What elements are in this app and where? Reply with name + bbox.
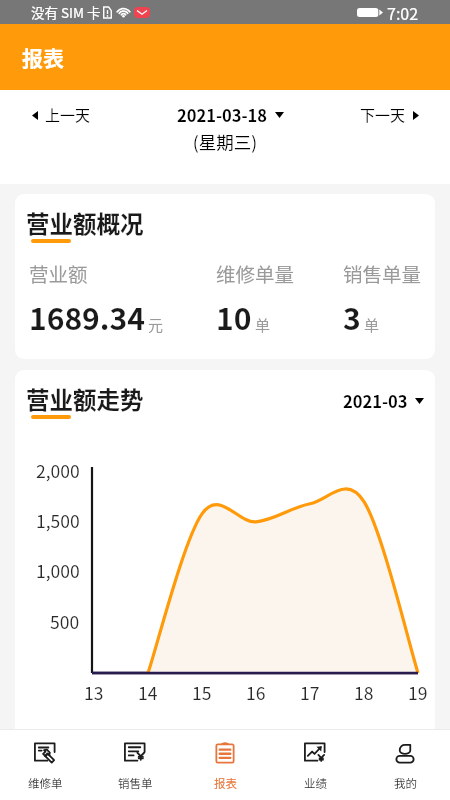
staticText: 单 — [255, 314, 271, 336]
staticText: 下一天 — [360, 104, 406, 126]
staticText: 16 — [246, 680, 266, 704]
staticText: 1,500 — [36, 508, 80, 533]
staticText: (星期三) — [0, 129, 450, 155]
staticText: 17 — [300, 680, 320, 704]
staticText: 7:02 — [387, 1, 419, 24]
staticText: 2,000 — [36, 458, 80, 483]
staticText: 报表 — [214, 775, 237, 792]
staticText: 维修单 — [28, 775, 63, 792]
staticText: 维修单量 — [216, 259, 295, 287]
button[interactable]: 报表 — [180, 730, 270, 800]
staticText: 2021-03 — [343, 389, 408, 413]
staticText: 13 — [84, 680, 104, 704]
staticText: 18 — [354, 680, 374, 704]
staticText: 上一天 — [45, 104, 91, 126]
staticText: 元 — [148, 314, 164, 336]
staticText: 1689.34 — [29, 295, 145, 338]
staticText: 单 — [364, 314, 380, 336]
staticText: 销售单量 — [343, 259, 422, 287]
staticText: 营业额概况 — [26, 206, 144, 240]
staticText: 19 — [408, 680, 428, 704]
button[interactable]: 上一天 — [32, 104, 91, 126]
button[interactable]: 2021-03 — [343, 389, 424, 413]
staticText: 没有 SIM 卡 — [31, 2, 101, 22]
staticText: 15 — [192, 680, 212, 704]
button[interactable]: 下一天 — [360, 104, 419, 126]
staticText: 3 — [343, 295, 361, 338]
staticText: 我的 — [394, 775, 417, 792]
button[interactable]: 维修单 — [0, 730, 90, 800]
staticText: 14 — [138, 680, 158, 704]
staticText: 销售单 — [118, 775, 153, 792]
staticText: 2021-03-18 — [177, 103, 268, 127]
staticText: 业绩 — [304, 775, 327, 792]
staticText: 报表 — [22, 42, 64, 72]
staticText: 1,000 — [36, 558, 80, 583]
staticText: 500 — [50, 609, 80, 634]
button[interactable]: 销售单 — [90, 730, 180, 800]
staticText: 营业额走势 — [26, 382, 144, 416]
button[interactable]: 我的 — [360, 730, 450, 800]
button[interactable]: 业绩 — [270, 730, 360, 800]
staticText: 营业额 — [29, 259, 88, 287]
button[interactable]: 2021-03-18 — [177, 103, 284, 127]
staticText: 10 — [216, 295, 252, 338]
